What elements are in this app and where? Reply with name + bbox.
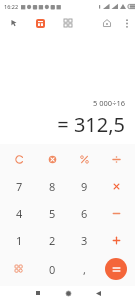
- button[interactable]: 0: [36, 254, 68, 284]
- button[interactable]: 9: [68, 173, 100, 200]
- staticText: 1: [16, 233, 23, 248]
- button[interactable]: Multiply: [100, 173, 132, 200]
- button[interactable]: Backspace: [36, 146, 68, 173]
- button[interactable]: More options: [119, 13, 135, 33]
- button[interactable]: 5: [36, 200, 68, 227]
- staticText: 0: [49, 262, 56, 277]
- button[interactable]: Home: [53, 286, 83, 300]
- button[interactable]: Recents: [23, 286, 53, 300]
- button[interactable]: 2: [36, 227, 68, 254]
- button[interactable]: Home: [95, 13, 119, 33]
- staticText: = 312,5: [57, 111, 125, 138]
- button[interactable]: Divide: [100, 146, 132, 173]
- button[interactable]: Percent: [68, 146, 100, 173]
- staticText: 4: [16, 206, 23, 221]
- button[interactable]: Plus: [100, 227, 132, 254]
- staticText: 8: [49, 179, 56, 194]
- button[interactable]: Converter: [3, 254, 36, 284]
- staticText: 5 000÷16: [93, 98, 125, 108]
- button[interactable]: Calculator: [27, 13, 54, 33]
- staticText: 16:22: [4, 3, 19, 10]
- button[interactable]: 6: [68, 200, 100, 227]
- staticText: 5: [49, 206, 56, 221]
- staticText: 2: [49, 233, 56, 248]
- button[interactable]: Clear: [3, 146, 36, 173]
- staticText: 9: [81, 179, 88, 194]
- button[interactable]: 3: [68, 227, 100, 254]
- staticText: ,: [83, 262, 86, 277]
- button[interactable]: 7: [3, 173, 36, 200]
- button[interactable]: 1: [3, 227, 36, 254]
- staticText: 3: [81, 233, 88, 248]
- button[interactable]: Split screen: [54, 13, 81, 33]
- staticText: 7: [16, 179, 23, 194]
- button[interactable]: 4: [3, 200, 36, 227]
- button[interactable]: Minus: [100, 200, 132, 227]
- staticText: 6: [81, 206, 88, 221]
- button[interactable]: Back: [83, 286, 113, 300]
- button[interactable]: 8: [36, 173, 68, 200]
- button[interactable]: Equals: [105, 258, 127, 280]
- button[interactable]: ,: [68, 254, 100, 284]
- button[interactable]: Back: [0, 13, 27, 33]
